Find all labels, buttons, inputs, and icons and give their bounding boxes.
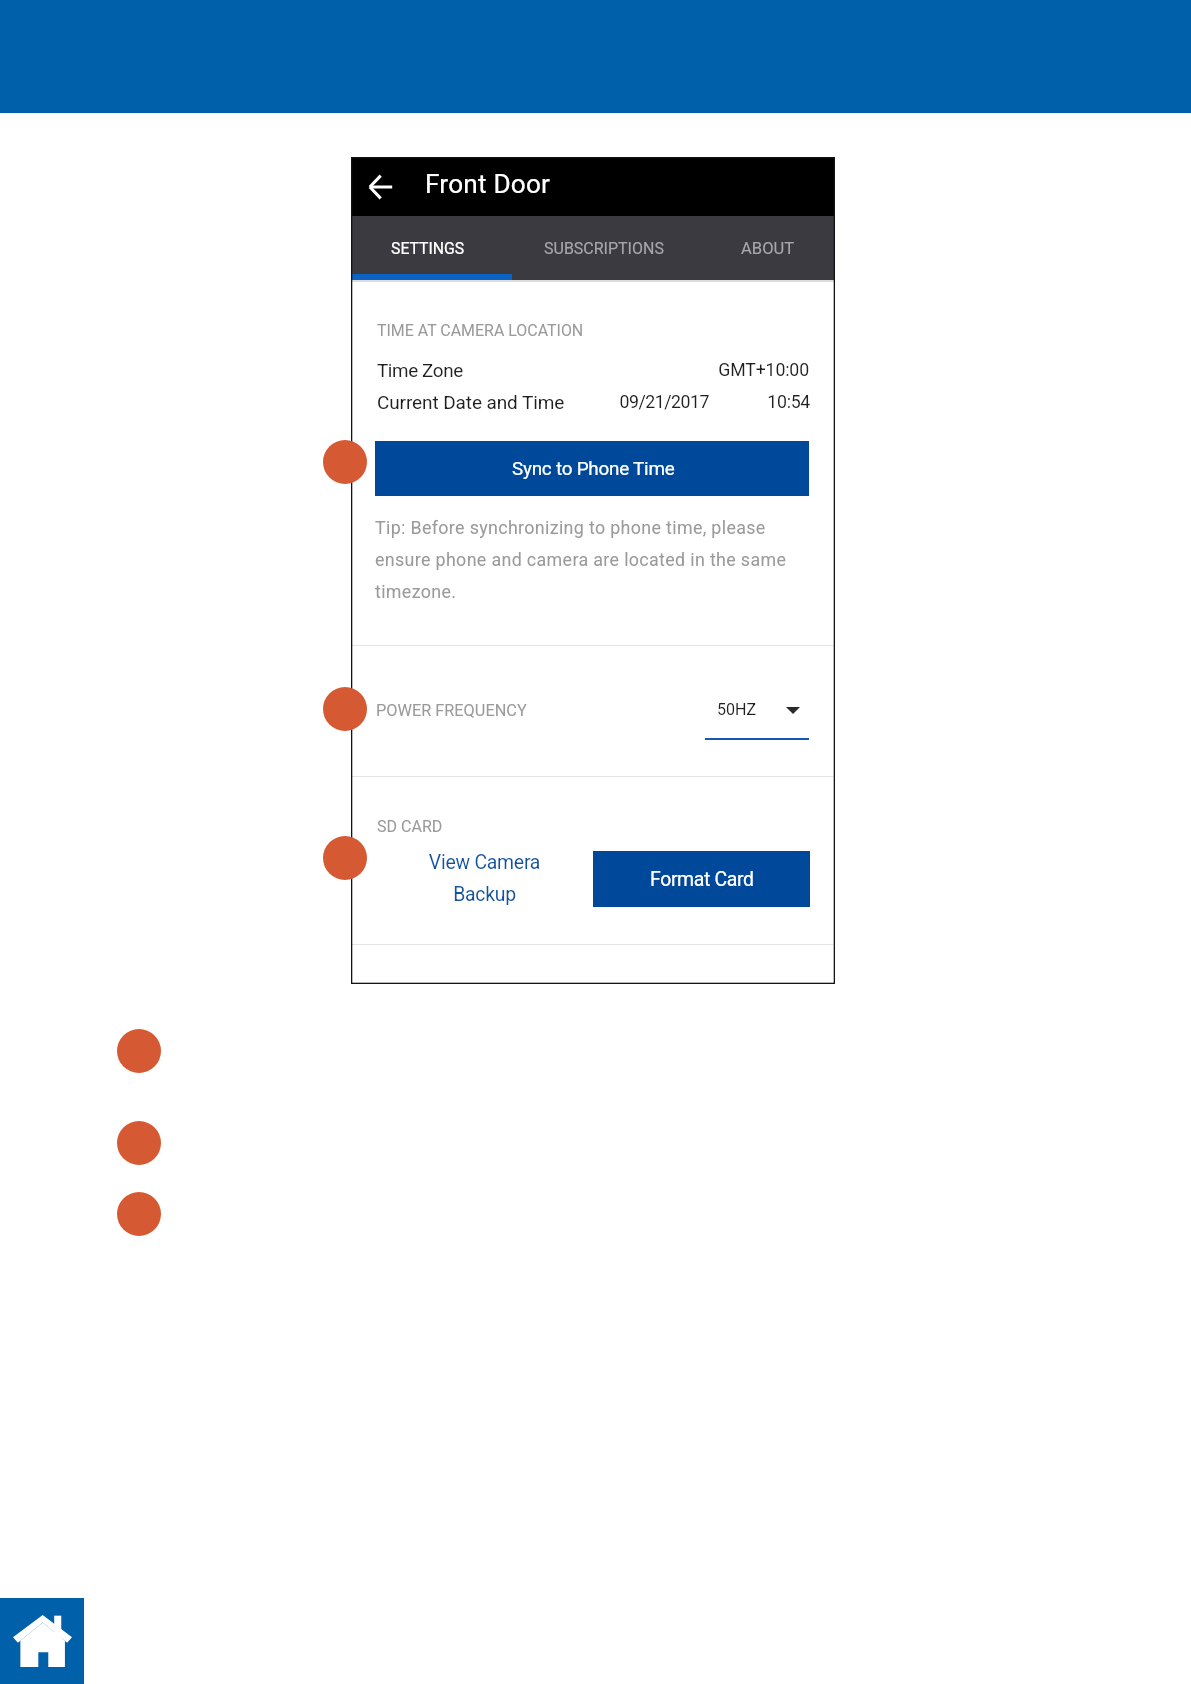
button[interactable]: Home [0,1598,84,1684]
button[interactable]: Sync to Phone Time [375,441,809,496]
button[interactable]: SETTINGS [351,216,504,281]
button[interactable]: Power frequency 50HZ [705,694,809,741]
staticText: POWER FREQUENCY [376,701,527,720]
button[interactable]: View Camera Backup [414,851,555,913]
staticText: Format Card [650,868,754,891]
button[interactable]: ABOUT [701,216,835,281]
staticText: Tip: Before synchronizing to phone time,… [375,517,813,602]
staticText: Time Zone [377,360,463,382]
staticText: Current Date and Time [377,391,565,413]
staticText: SUBSCRIPTIONS [544,239,664,258]
staticText: SD CARD [377,817,443,836]
button[interactable]: Format Card [593,851,810,907]
staticText: GMT+10:00 [718,360,809,381]
staticText: Sync to Phone Time [512,458,675,480]
staticText: 10:54 [767,392,810,413]
staticText: Front Door [425,169,551,200]
staticText: 09/21/2017 [619,392,709,413]
staticText: SETTINGS [391,239,465,258]
staticText: View Camera Backup [414,851,555,906]
staticText: 50HZ [717,700,757,719]
button[interactable]: Back [359,165,403,209]
staticText: ABOUT [741,239,795,258]
staticText: TIME AT CAMERA LOCATION [377,321,584,340]
button[interactable]: SUBSCRIPTIONS [504,216,704,281]
